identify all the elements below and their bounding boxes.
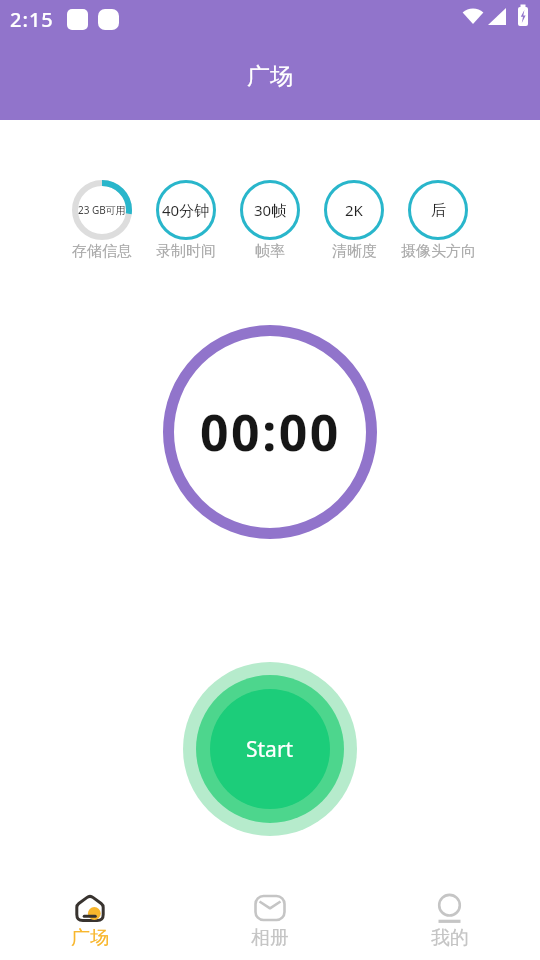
button[interactable]: Start [183,662,357,836]
staticText: 存储信息 [72,242,132,261]
staticText: 摄像头方向 [401,242,476,261]
staticText: 广场 [71,926,109,950]
staticText: 23 GB可用 [78,203,126,217]
button[interactable]: 30帧 [228,180,312,261]
staticText: 00:00 [200,398,341,466]
button[interactable]: 广场 [0,870,180,960]
staticText: 帧率 [255,242,285,261]
staticText: 相册 [251,926,289,950]
staticText: 2K [345,200,363,220]
staticText: Start [246,735,294,764]
button[interactable]: 相册 [180,870,360,960]
staticText: 30帧 [254,200,287,220]
button[interactable]: 我的 [360,870,540,960]
staticText: 后 [431,201,446,220]
staticText: 我的 [431,926,469,950]
staticText: 广场 [247,62,293,91]
staticText: 录制时间 [156,242,216,261]
button[interactable]: 后 [396,180,480,261]
button[interactable]: 40分钟 [144,180,228,261]
staticText: 2:15 [10,6,54,33]
staticText: 40分钟 [162,200,210,220]
button[interactable]: 2K [312,180,396,261]
staticText: 清晰度 [332,242,377,261]
button[interactable]: 23 GB可用 [60,180,144,261]
